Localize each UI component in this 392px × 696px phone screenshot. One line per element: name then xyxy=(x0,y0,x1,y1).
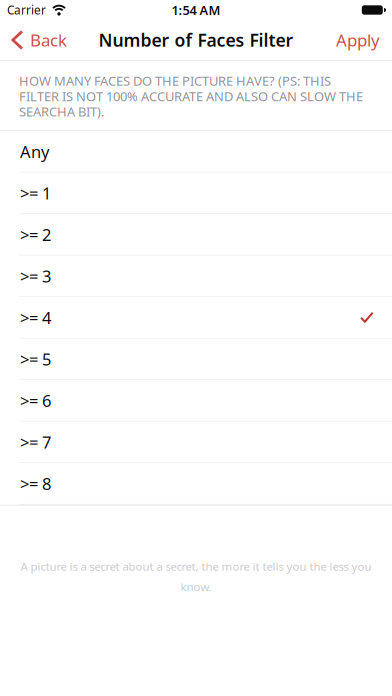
button[interactable]: >= 1 xyxy=(0,173,392,214)
button[interactable]: >= 3 xyxy=(0,256,392,297)
button[interactable]: Any xyxy=(0,131,392,173)
staticText: >= 2 xyxy=(20,223,51,246)
staticText: >= 6 xyxy=(20,389,51,412)
button[interactable]: >= 8 xyxy=(0,463,392,505)
button[interactable]: >= 6 xyxy=(0,380,392,422)
staticText: Any xyxy=(20,140,49,163)
staticText: >= 5 xyxy=(20,348,51,370)
button[interactable]: >= 7 xyxy=(0,422,392,463)
staticText: Carrier xyxy=(7,2,46,18)
button[interactable]: >= 2 xyxy=(0,214,392,256)
staticText: Number of Faces Filter xyxy=(98,28,293,52)
staticText: HOW MANY FACES DO THE PICTURE HAVE? (PS:… xyxy=(19,72,331,89)
staticText: >= 3 xyxy=(20,265,51,287)
staticText: >= 1 xyxy=(20,182,51,204)
button[interactable]: Back xyxy=(0,20,77,60)
staticText: Apply xyxy=(336,29,380,51)
staticText: >= 4 xyxy=(20,306,51,329)
staticText: know. xyxy=(180,579,211,594)
staticText: Back xyxy=(30,29,67,51)
staticText: >= 8 xyxy=(20,472,51,495)
button[interactable]: Apply xyxy=(324,20,392,60)
staticText: A picture is a secret about a secret, th… xyxy=(20,559,371,574)
staticText: 1:54 AM xyxy=(171,1,220,19)
button[interactable]: >= 4 xyxy=(0,297,392,339)
staticText: >= 7 xyxy=(20,431,51,453)
button[interactable]: >= 5 xyxy=(0,339,392,380)
staticText: FILTER IS NOT 100% ACCURATE AND ALSO CAN… xyxy=(19,87,363,105)
staticText: SEARCHA BIT). xyxy=(19,103,104,120)
